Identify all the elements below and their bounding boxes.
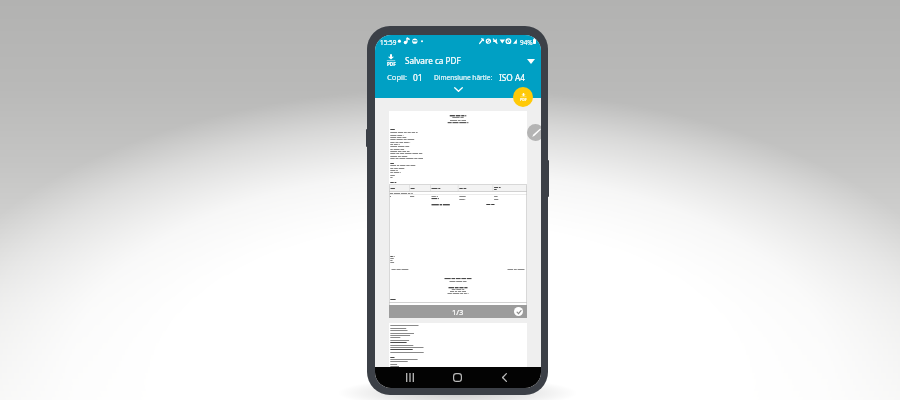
staticText: ISO A4 xyxy=(499,72,526,83)
button[interactable]: 1/3 xyxy=(389,305,527,318)
staticText: 1/3 xyxy=(452,307,464,317)
staticText: PDF xyxy=(520,97,527,102)
button[interactable]: Dimensiune hârtie: xyxy=(434,70,526,84)
button[interactable]: More options xyxy=(375,84,541,95)
staticText: 94% xyxy=(520,38,533,47)
button[interactable]: Save as PDF xyxy=(513,87,533,107)
staticText: Copii: xyxy=(387,72,408,82)
staticText: Salvare ca PDF xyxy=(405,55,461,66)
staticText: 15:59 xyxy=(380,38,397,47)
staticText: Dimensiune hârtie: xyxy=(434,73,493,82)
button[interactable]: Edit xyxy=(527,124,541,141)
staticText: 01 xyxy=(413,72,423,83)
button[interactable]: Recents xyxy=(397,367,423,388)
staticText: PDF xyxy=(387,61,396,67)
button[interactable]: Page selected xyxy=(514,307,523,316)
button[interactable]: Choose printer xyxy=(524,54,538,68)
button[interactable]: Copii: xyxy=(387,70,423,84)
button[interactable]: Home xyxy=(444,367,470,388)
button[interactable]: Back xyxy=(491,367,517,388)
button[interactable]: PDF xyxy=(375,52,541,69)
